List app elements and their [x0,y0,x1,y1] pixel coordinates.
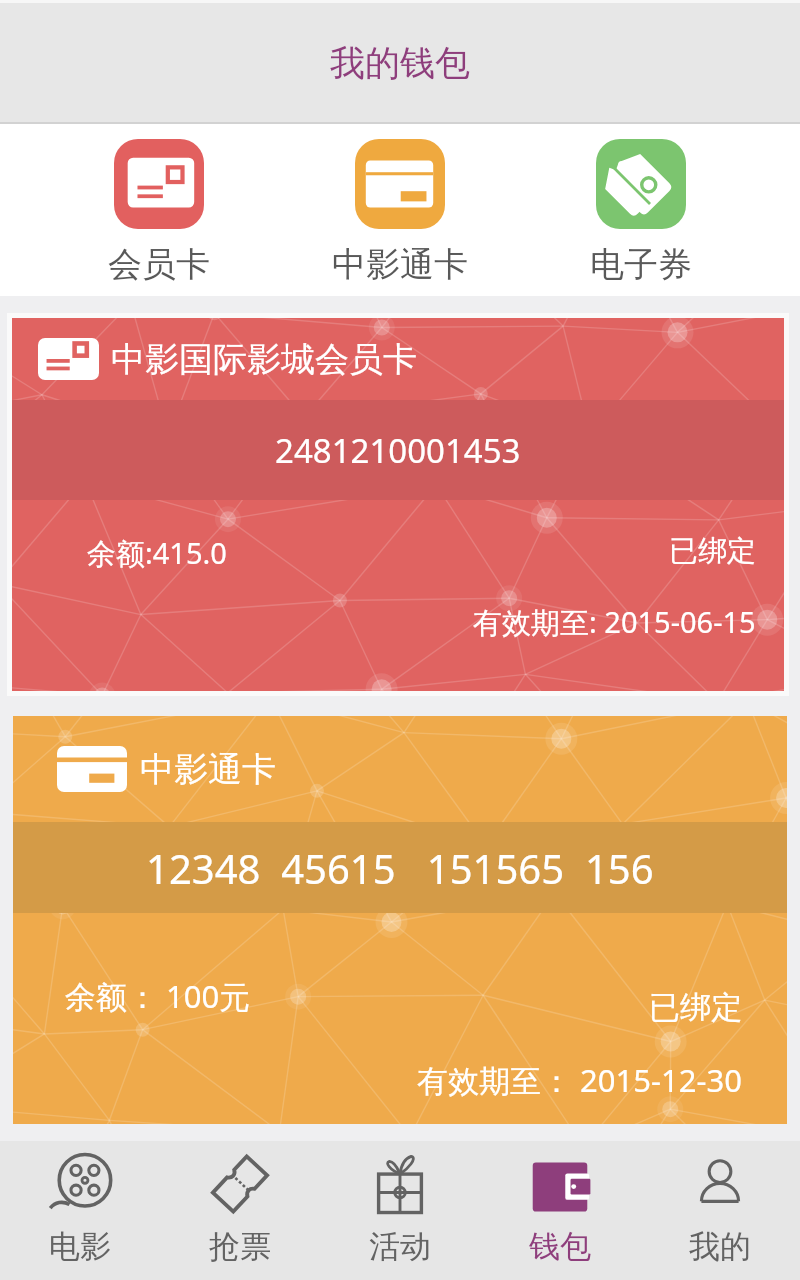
button[interactable]: 我的 [640,1141,800,1280]
staticText: 已绑定 [649,988,742,1027]
staticText: 有效期至： 2015-12-30 [417,1059,742,1101]
staticText: 我的 [689,1227,751,1266]
button[interactable]: 抢票 [160,1141,320,1280]
staticText: 我的钱包 [330,41,470,85]
staticText: 已绑定 [669,533,756,570]
button[interactable]: 会员卡 [100,135,218,290]
staticText: 12348 45615 151565 156 [146,841,654,895]
staticText: 活动 [369,1227,431,1266]
staticText: 有效期至: 2015-06-15 [473,602,756,642]
staticText: 电影 [49,1227,111,1266]
staticText: 抢票 [209,1227,271,1266]
button[interactable]: 电影 [0,1141,160,1280]
button[interactable]: 中影通卡 [324,135,476,290]
staticText: 电子券 [590,243,692,286]
staticText: 中影通卡 [140,748,276,791]
button[interactable]: 电子券 [582,135,700,290]
staticText: 余额:415.0 [87,533,227,573]
staticText: 中影通卡 [332,243,468,286]
staticText: 会员卡 [108,243,210,286]
button[interactable]: 中影通卡 [13,716,787,1124]
button[interactable]: 钱包 [480,1141,640,1280]
staticText: 钱包 [529,1227,591,1266]
button[interactable]: 活动 [320,1141,480,1280]
staticText: 余额： 100元 [65,975,251,1017]
staticText: 中影国际影城会员卡 [111,338,417,381]
button[interactable]: 中影国际影城会员卡 [12,318,784,691]
staticText: 2481210001453 [275,428,521,473]
